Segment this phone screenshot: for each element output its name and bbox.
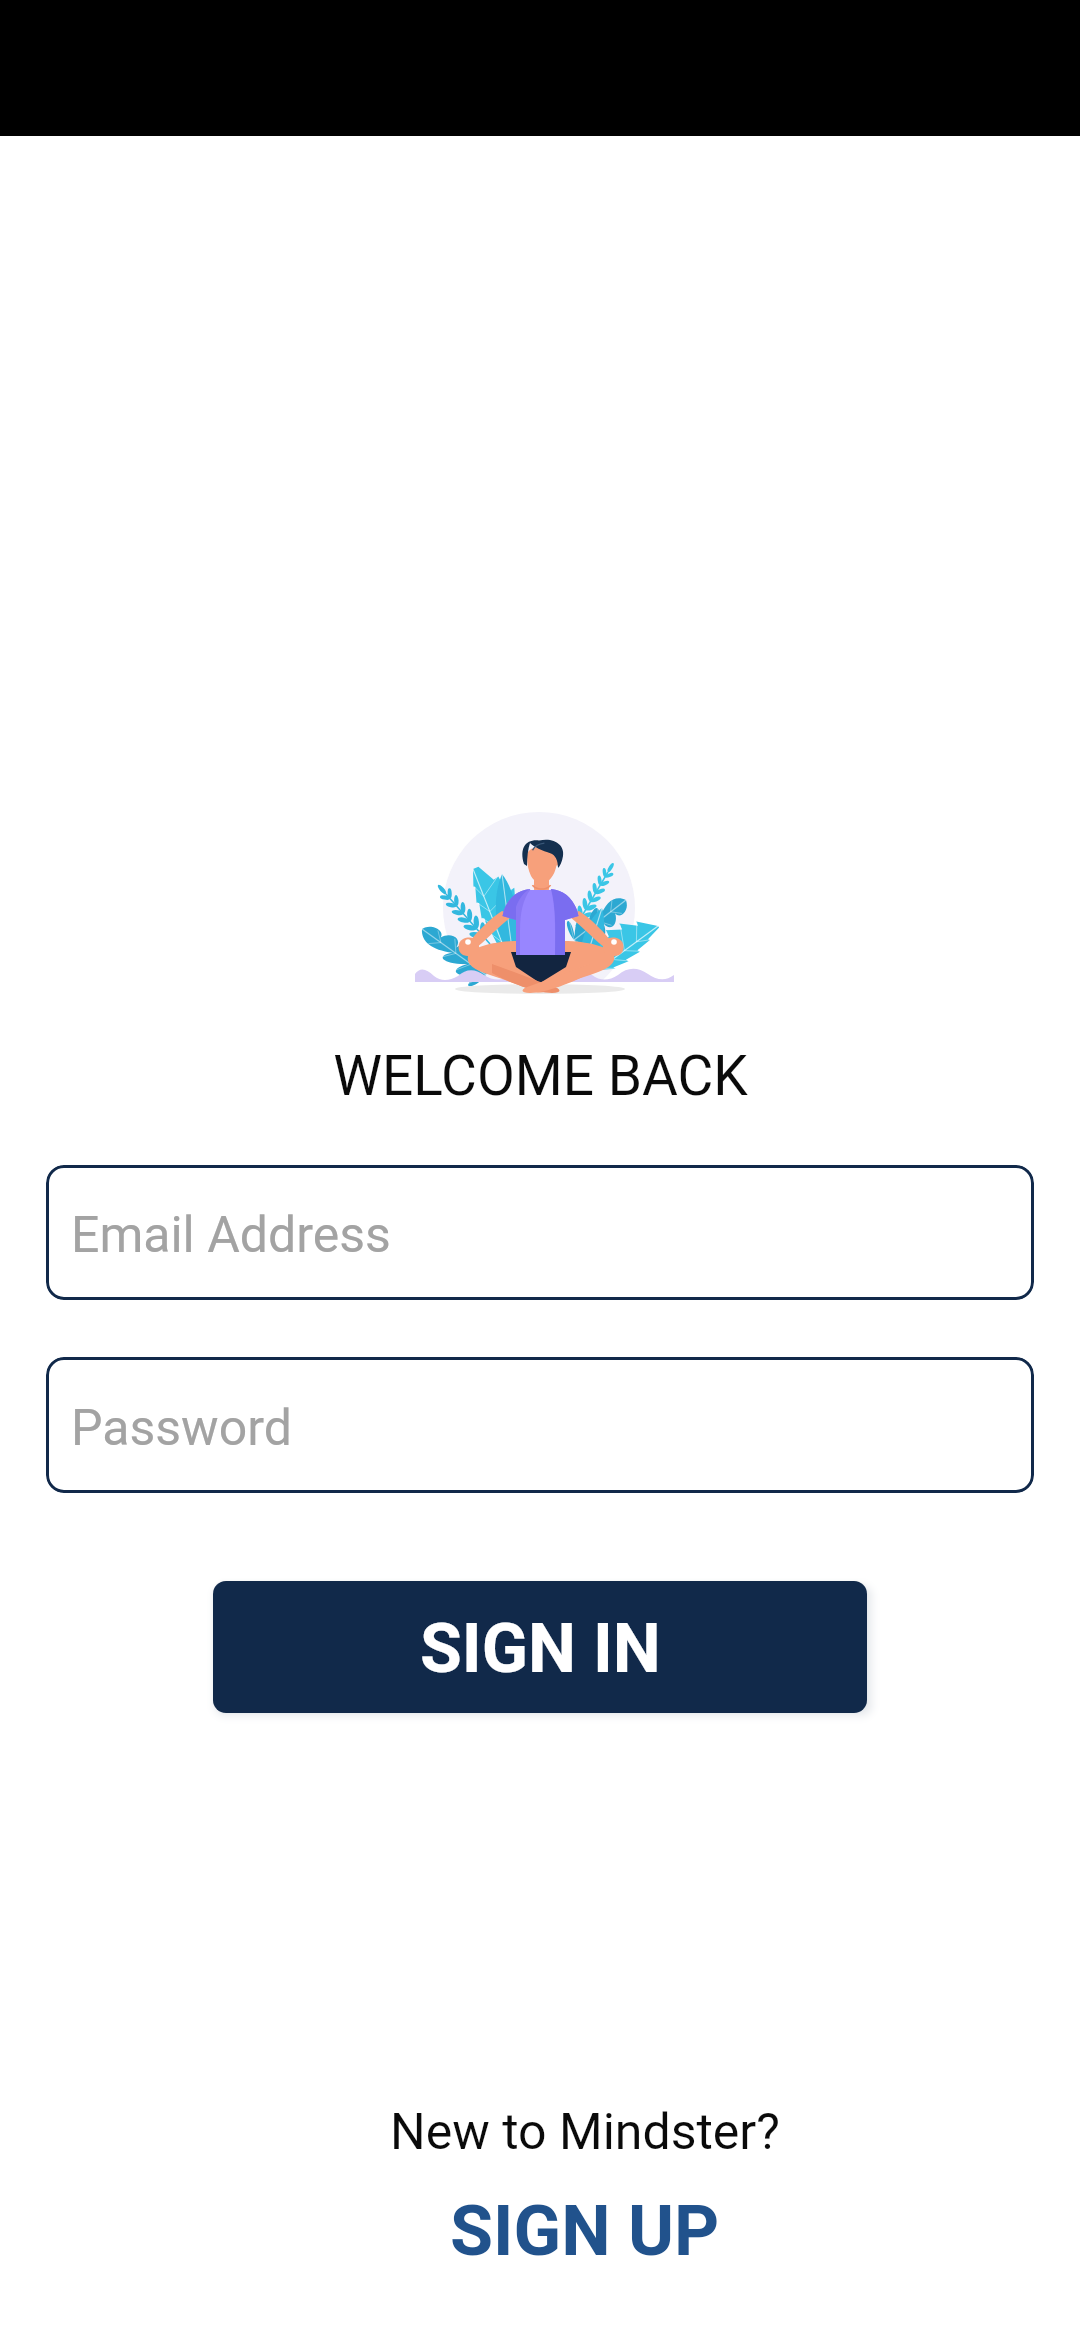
staticText: New to Mindster?: [390, 2103, 780, 2162]
button[interactable]: SIGN IN: [213, 1581, 867, 1713]
staticText: WELCOME BACK: [333, 1044, 748, 1108]
staticText: SIGN IN: [420, 1609, 661, 1689]
staticText: Password: [71, 1399, 292, 1458]
button[interactable]: SIGN UP: [422, 2180, 748, 2282]
button[interactable]: Password: [46, 1357, 1034, 1493]
button[interactable]: Email Address: [46, 1165, 1034, 1300]
staticText: Email Address: [71, 1206, 391, 1265]
other: Person meditating illustration: [406, 812, 678, 1000]
staticText: SIGN UP: [450, 2190, 720, 2272]
